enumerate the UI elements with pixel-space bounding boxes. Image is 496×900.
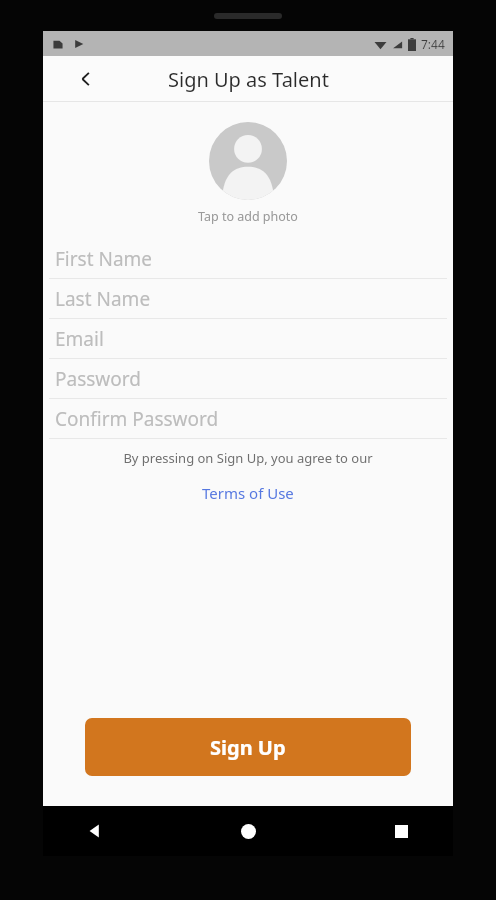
button[interactable]: Sign Up	[85, 718, 411, 776]
staticText: Password	[55, 366, 141, 392]
staticText: Sign Up	[210, 734, 286, 761]
button[interactable]: First Name	[49, 239, 447, 279]
staticText: Terms of Use	[202, 483, 294, 503]
button[interactable]: Back	[73, 809, 117, 853]
staticText: Last Name	[55, 286, 151, 312]
button[interactable]: Recent apps	[379, 809, 423, 853]
button[interactable]: Back	[69, 62, 103, 96]
button[interactable]: Home	[226, 809, 270, 853]
button[interactable]: Tap to add photo	[209, 122, 287, 200]
button[interactable]: Confirm Password	[49, 399, 447, 439]
staticText: 7:44	[421, 36, 445, 52]
staticText: By pressing on Sign Up, you agree to our	[55, 449, 441, 467]
button[interactable]: Password	[49, 359, 447, 399]
staticText: Sign Up as Talent	[168, 66, 329, 93]
staticText: Email	[55, 326, 104, 352]
staticText: First Name	[55, 246, 153, 272]
button[interactable]: Terms of Use	[192, 481, 304, 505]
staticText: Tap to add photo	[198, 208, 298, 225]
button[interactable]: Last Name	[49, 279, 447, 319]
staticText: Confirm Password	[55, 406, 219, 432]
button[interactable]: Email	[49, 319, 447, 359]
